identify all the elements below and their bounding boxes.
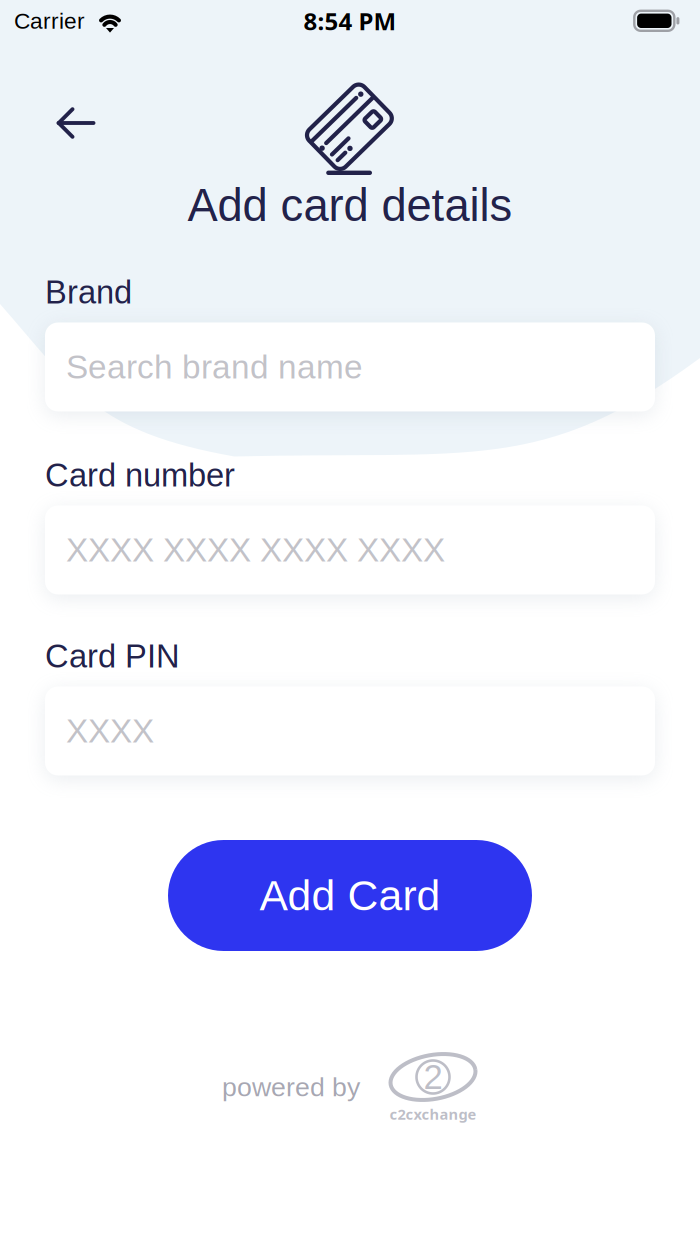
button[interactable]: XXXX bbox=[45, 686, 655, 775]
staticText: Carrier bbox=[14, 8, 85, 34]
staticText: c2cxchange bbox=[389, 1104, 476, 1124]
staticText: Add card details bbox=[187, 180, 512, 231]
staticText: Brand bbox=[45, 274, 132, 310]
button[interactable]: Add Card bbox=[168, 840, 532, 951]
staticText: powered by bbox=[222, 1072, 360, 1102]
staticText: Card PIN bbox=[45, 638, 180, 674]
staticText: XXXX XXXX XXXX XXXX bbox=[66, 531, 445, 569]
staticText: Add Card bbox=[259, 872, 440, 919]
staticText: 8:54 PM bbox=[303, 5, 396, 37]
button[interactable]: Search brand name bbox=[45, 322, 655, 411]
staticText: Search brand name bbox=[66, 348, 363, 386]
button[interactable]: XXXX XXXX XXXX XXXX bbox=[45, 505, 655, 594]
staticText: XXXX bbox=[66, 712, 154, 750]
staticText: Card number bbox=[45, 457, 235, 493]
staticText: 2 bbox=[423, 1058, 442, 1096]
button[interactable]: Back bbox=[42, 91, 110, 155]
